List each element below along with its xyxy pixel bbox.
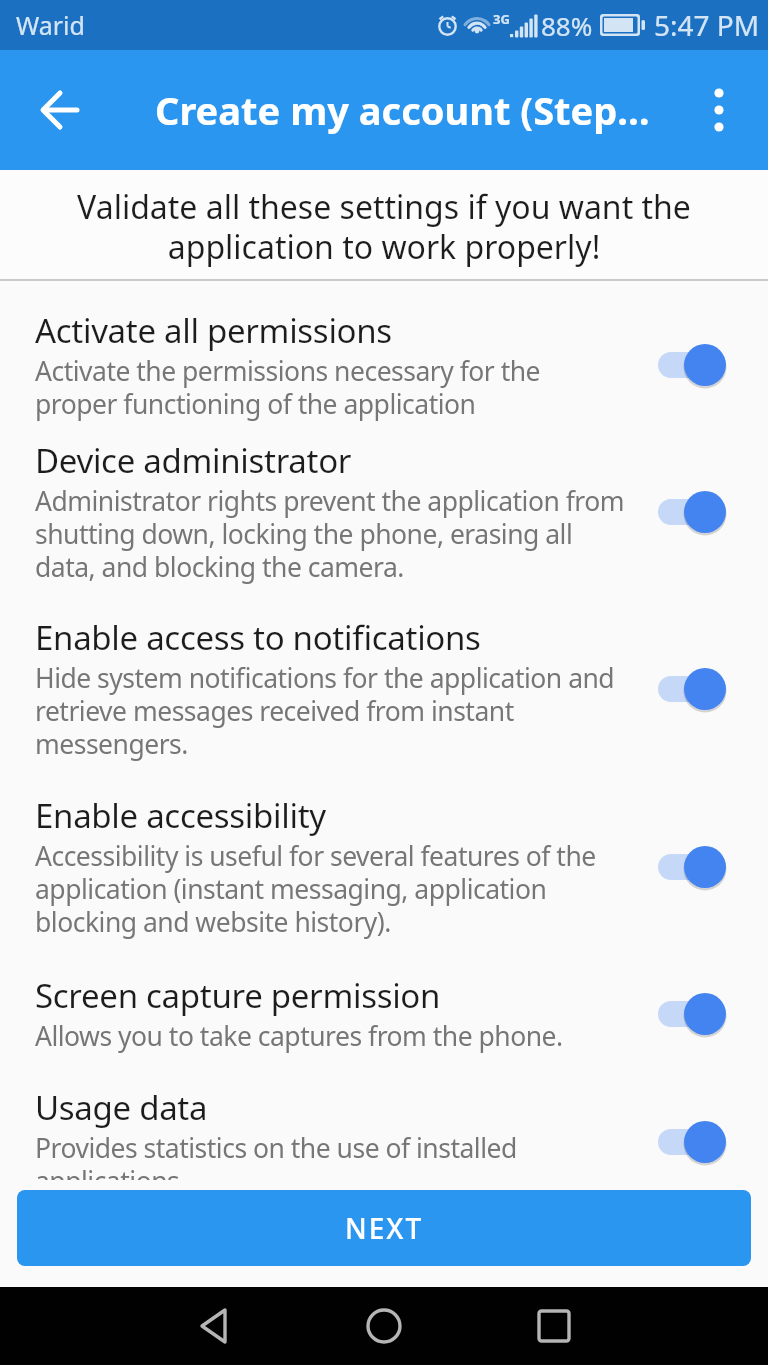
staticText: Allows you to take captures from the pho… — [35, 1018, 563, 1054]
staticText: 88% — [541, 8, 593, 43]
button[interactable] — [655, 489, 725, 535]
button[interactable] — [655, 1119, 725, 1165]
button[interactable]: Activate all permissions — [35, 308, 725, 422]
button[interactable] — [670, 50, 768, 170]
button[interactable]: Usage data — [35, 1085, 725, 1199]
staticText: Create my account (Step… — [155, 84, 650, 136]
staticText: Activate all permissions — [35, 308, 392, 353]
button[interactable]: NEXT — [17, 1190, 751, 1266]
staticText: Validate all these settings if you want … — [77, 185, 691, 269]
staticText: NEXT — [345, 1209, 424, 1247]
staticText: Enable access to notifications — [35, 615, 481, 660]
button[interactable] — [192, 1304, 236, 1348]
staticText: Provides statistics on the use of instal… — [35, 1130, 517, 1199]
staticText: Enable accessibility — [35, 793, 326, 838]
button[interactable] — [655, 666, 725, 712]
staticText: 3G — [493, 10, 510, 28]
button[interactable]: Screen capture permission — [35, 973, 725, 1054]
button[interactable] — [655, 844, 725, 890]
staticText: Usage data — [35, 1085, 208, 1130]
button[interactable] — [655, 342, 725, 388]
button[interactable]: Enable accessibility — [35, 793, 725, 940]
staticText: Hide system notifications for the applic… — [35, 660, 615, 762]
staticText: Activate the permissions necessary for t… — [35, 353, 541, 422]
staticText: Accessibility is useful for several feat… — [35, 838, 596, 940]
staticText: Screen capture permission — [35, 973, 441, 1018]
button[interactable] — [362, 1304, 406, 1348]
button[interactable]: Enable access to notifications — [35, 615, 725, 762]
button[interactable] — [0, 50, 120, 170]
button[interactable] — [655, 991, 725, 1037]
staticText: Device administrator — [35, 438, 352, 483]
button[interactable]: Device administrator — [35, 438, 725, 585]
staticText: Administrator rights prevent the applica… — [35, 483, 625, 585]
staticText: 5:47 PM — [654, 6, 760, 44]
staticText: Warid — [16, 8, 85, 42]
button[interactable] — [532, 1304, 576, 1348]
